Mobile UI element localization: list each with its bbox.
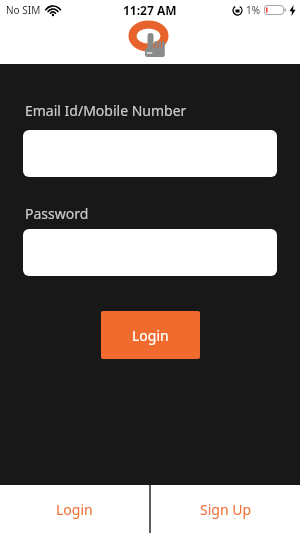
staticText: 1% [246, 3, 261, 17]
button[interactable]: Login [0, 485, 149, 533]
staticText: No SIM [6, 3, 41, 17]
button[interactable]: Login [101, 311, 200, 359]
staticText: Login [132, 326, 169, 345]
button[interactable]: Sign Up [151, 485, 300, 533]
staticText: Password [25, 204, 89, 223]
staticText: Sign Up [200, 500, 252, 519]
button[interactable] [23, 130, 277, 177]
button[interactable] [23, 229, 277, 276]
staticText: Email Id/Mobile Number [25, 101, 187, 120]
staticText: Login [56, 500, 93, 519]
staticText: 11:27 AM [123, 2, 177, 18]
